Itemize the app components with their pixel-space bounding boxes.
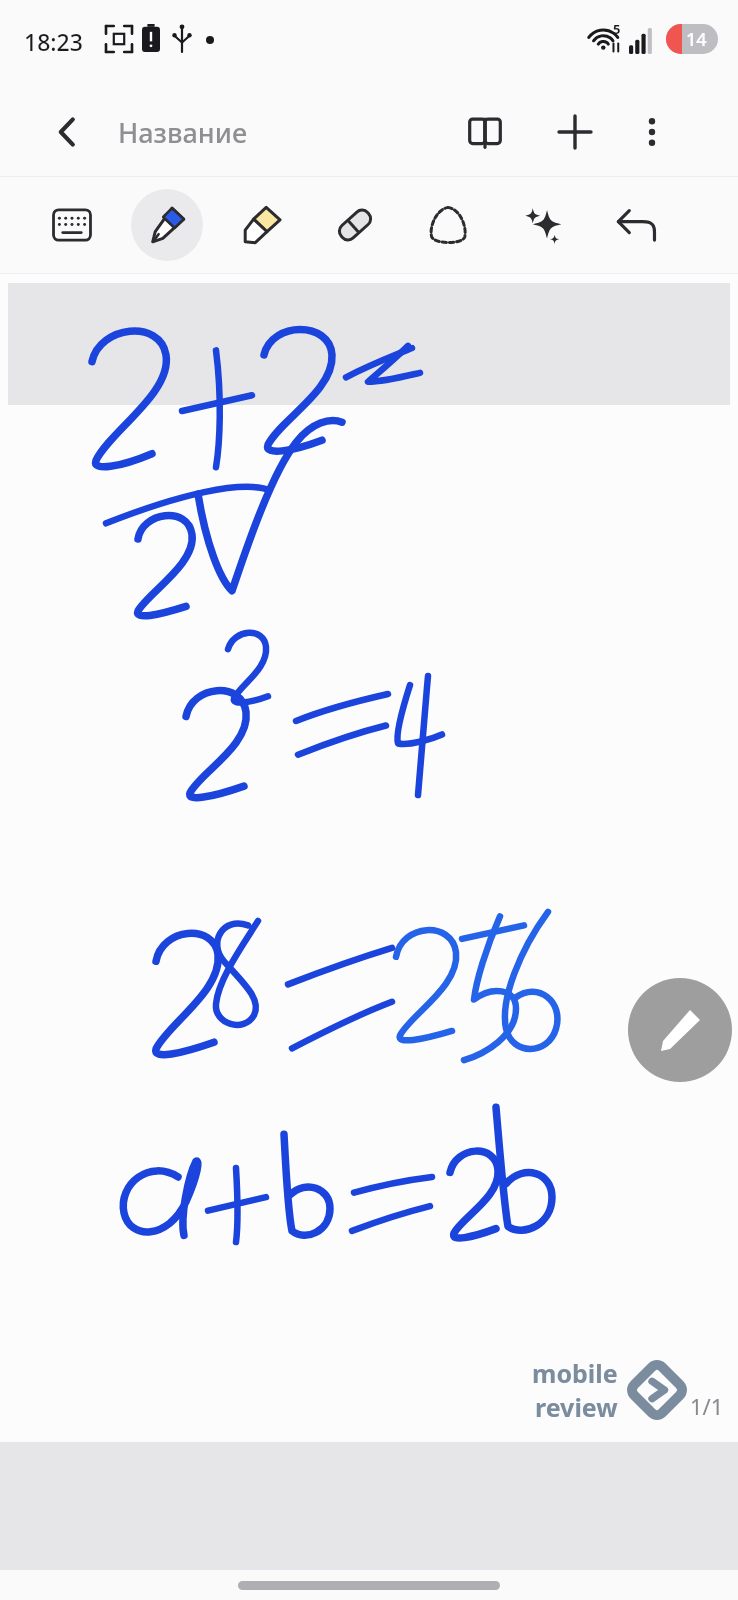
- button[interactable]: Eraser: [319, 189, 391, 261]
- button[interactable]: Book view: [455, 102, 515, 162]
- button[interactable]: More options: [622, 102, 682, 162]
- staticText: 18:23: [24, 26, 83, 57]
- button[interactable]: Lasso select: [412, 189, 484, 261]
- staticText: 1/1: [690, 1391, 724, 1421]
- button[interactable]: Pen: [131, 189, 203, 261]
- button[interactable]: Highlighter: [226, 189, 298, 261]
- button[interactable]: Название: [118, 114, 248, 151]
- button[interactable]: Keyboard: [36, 189, 108, 261]
- button[interactable]: Edit: [628, 978, 732, 1082]
- button[interactable]: AI tools: [506, 189, 578, 261]
- staticText: 14: [686, 27, 707, 52]
- staticText: mobile: [532, 1356, 618, 1390]
- button[interactable]: Undo: [600, 189, 672, 261]
- button[interactable]: Back: [38, 102, 98, 162]
- button[interactable]: Add: [545, 102, 605, 162]
- staticText: 5: [613, 20, 621, 38]
- staticText: review: [535, 1390, 618, 1424]
